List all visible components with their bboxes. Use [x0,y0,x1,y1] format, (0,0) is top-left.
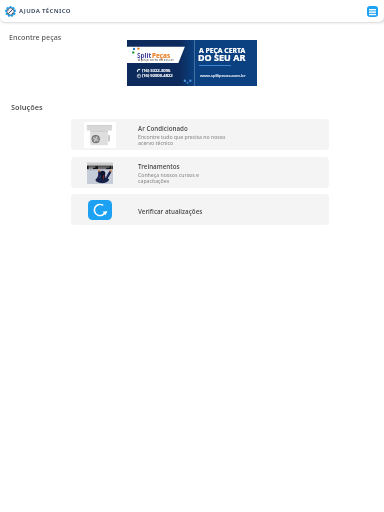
staticText: Conheça nossos cursos e capacitações [138,171,200,185]
staticText: Encontre tudo que precisa no nosso acerv… [138,133,226,147]
staticText: Split [137,51,152,60]
button[interactable]: Menu [367,6,378,17]
staticText: DO SEU AR [198,51,246,63]
button[interactable]: Treinamentos [71,157,329,188]
staticText: Ar Condicionado [138,124,188,132]
staticText: AJUDA TÉCNICO [19,7,71,15]
staticText: A PEÇA CERTA [199,46,246,55]
staticText: (16) 92000-4822 [142,73,173,79]
staticText: A peça certa do seu ar [138,57,174,62]
staticText: Peças [152,51,171,60]
button[interactable]: Verificar atualizações [71,194,329,225]
staticText: Treinamentos [138,162,180,170]
staticText: Encontre peças [9,32,62,42]
button[interactable]: Banner SplitPecas [127,40,257,86]
staticText: Verificar atualizações [138,207,203,215]
button[interactable]: Ar Condicionado [71,119,329,150]
staticText: www.splitpecas.com.br [200,73,246,79]
staticText: Soluções [11,102,43,112]
staticText: (16) 3322-3096 [142,68,171,74]
